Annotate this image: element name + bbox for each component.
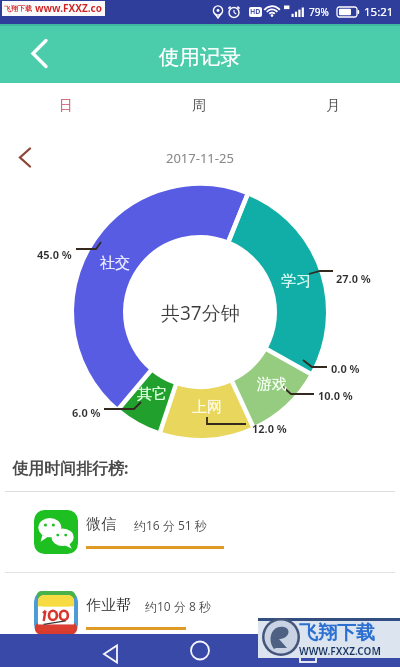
staticText: 游戏 <box>257 375 287 394</box>
staticText: 使用时间排行榜: <box>12 457 129 479</box>
staticText: 其它 <box>137 385 167 404</box>
staticText: 周 <box>192 97 206 115</box>
staticText: 社交 <box>100 254 130 273</box>
staticText: 共37分钟 <box>161 300 240 326</box>
button[interactable]: Back <box>0 24 56 83</box>
button[interactable]: 作业帮 <box>0 573 400 654</box>
staticText: 15:21 <box>364 4 394 20</box>
staticText: 10.0 % <box>318 388 353 403</box>
button[interactable]: Back <box>92 634 132 667</box>
staticText: 使用记录 <box>159 44 241 70</box>
button[interactable]: 月 <box>303 80 363 132</box>
staticText: 约16 分 51 秒 <box>134 517 207 533</box>
staticText: 约10 分 8 秒 <box>145 598 211 614</box>
staticText: HD <box>250 7 261 17</box>
staticText: 0.0 % <box>331 361 360 376</box>
staticText: 27.0 % <box>336 271 371 286</box>
staticText: 学习 <box>281 272 311 291</box>
staticText: 2017-11-25 <box>166 149 234 167</box>
button[interactable]: Recent apps <box>288 634 328 667</box>
button[interactable]: 日 <box>36 80 96 132</box>
staticText: 飞翔下载 <box>299 621 375 645</box>
staticText: 日 <box>59 97 73 115</box>
staticText: WWW.FXXZ.COM <box>299 644 381 658</box>
button[interactable]: 周 <box>169 80 229 132</box>
staticText: 作业帮 <box>86 596 131 615</box>
staticText: 6.0 % <box>72 405 101 420</box>
staticText: 飞翔下载 <box>4 4 32 13</box>
staticText: 上网 <box>192 398 222 417</box>
staticText: 45.0 % <box>37 247 72 262</box>
staticText: 12.0 % <box>252 421 287 436</box>
staticText: www.FXXZ.com <box>35 1 105 16</box>
staticText: 月 <box>326 97 340 115</box>
button[interactable]: Home <box>180 634 220 667</box>
staticText: 79% <box>309 5 329 19</box>
button[interactable]: Previous day <box>0 135 44 180</box>
staticText: 微信 <box>86 515 116 534</box>
button[interactable]: 微信 <box>0 492 400 573</box>
